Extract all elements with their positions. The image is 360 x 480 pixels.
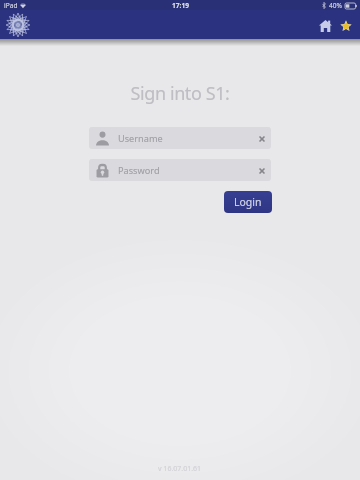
- button[interactable]: Clear Password: [253, 161, 271, 179]
- button[interactable]: Password: [89, 159, 271, 181]
- button[interactable]: Username: [89, 127, 271, 149]
- button[interactable]: Home: [314, 16, 336, 36]
- staticText: Password: [118, 164, 160, 177]
- button[interactable]: Clear Username: [253, 129, 271, 147]
- staticText: Sign into S1:: [0, 81, 360, 106]
- staticText: iPad: [4, 1, 18, 10]
- staticText: 40%: [329, 1, 343, 10]
- button[interactable]: Login: [224, 191, 272, 213]
- staticText: Username: [118, 132, 163, 145]
- staticText: v 16.07.01.61: [158, 464, 202, 474]
- button[interactable]: Favorites: [335, 16, 357, 36]
- staticText: 17:19: [172, 1, 189, 10]
- staticText: Login: [234, 195, 262, 209]
